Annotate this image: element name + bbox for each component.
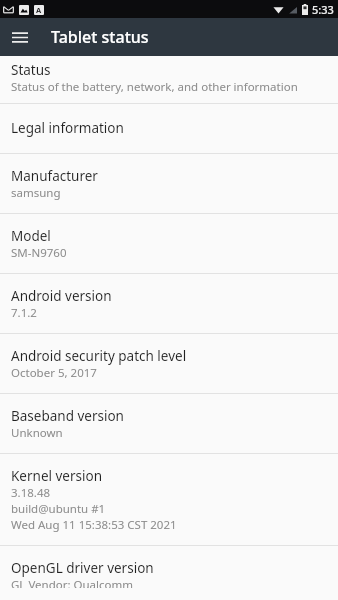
- button[interactable]: Model: [0, 214, 338, 273]
- staticText: Manufacturer: [11, 167, 98, 185]
- staticText: October 5, 2017: [11, 365, 97, 381]
- button[interactable]: Manufacturer: [0, 154, 338, 213]
- staticText: Baseband version: [11, 407, 124, 425]
- staticText: 7.1.2: [11, 305, 37, 321]
- button[interactable]: Android security patch level: [0, 334, 338, 393]
- staticText: Kernel version: [11, 467, 103, 485]
- staticText: GL Vendor: Qualcomm: [11, 577, 133, 588]
- staticText: Status of the battery, network, and othe…: [11, 79, 298, 95]
- button[interactable]: Legal information: [0, 104, 338, 153]
- staticText: Status: [11, 61, 51, 79]
- staticText: Legal information: [11, 119, 124, 137]
- button[interactable]: OpenGL driver version: [0, 546, 338, 600]
- staticText: Model: [11, 227, 51, 245]
- button[interactable]: Status: [0, 56, 338, 103]
- staticText: Android security patch level: [11, 347, 187, 365]
- staticText: Tablet status: [51, 26, 149, 48]
- staticText: SM-N9760: [11, 245, 67, 261]
- button[interactable]: Kernel version: [0, 454, 338, 545]
- staticText: A: [36, 5, 42, 15]
- staticText: 3.18.48: [11, 485, 51, 501]
- button[interactable]: Android version: [0, 274, 338, 333]
- staticText: 5:33: [312, 2, 334, 17]
- staticText: build@ubuntu #1: [11, 501, 106, 517]
- button[interactable]: Open navigation drawer: [5, 22, 35, 52]
- staticText: samsung: [11, 185, 61, 201]
- staticText: Wed Aug 11 15:38:53 CST 2021: [11, 517, 177, 533]
- staticText: Android version: [11, 287, 112, 305]
- staticText: Unknown: [11, 425, 63, 441]
- button[interactable]: Baseband version: [0, 394, 338, 453]
- staticText: OpenGL driver version: [11, 559, 154, 577]
